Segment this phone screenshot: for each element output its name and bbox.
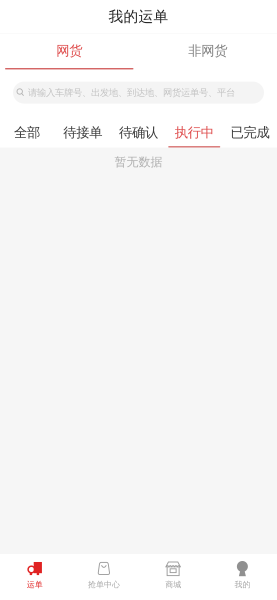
button[interactable]: 执行中: [168, 110, 220, 148]
button[interactable]: 网货: [0, 34, 138, 70]
staticText: 请输入车牌号、出发地、到达地、网货运单号、平台: [28, 87, 235, 98]
staticText: 待接单: [63, 124, 102, 141]
staticText: 待确认: [119, 124, 158, 141]
button[interactable]: 商城: [138, 555, 208, 599]
button[interactable]: 我的: [208, 555, 277, 599]
button[interactable]: 请输入车牌号、出发地、到达地、网货运单号、平台: [13, 82, 264, 104]
button[interactable]: 已完成: [224, 110, 276, 148]
staticText: 网货: [56, 43, 82, 59]
staticText: 抢单中心: [88, 580, 120, 589]
staticText: 全部: [14, 124, 40, 141]
button[interactable]: 抢单中心: [69, 555, 138, 599]
staticText: 商城: [165, 580, 181, 589]
button[interactable]: 运单: [0, 555, 69, 599]
staticText: 非网货: [188, 43, 227, 59]
staticText: 已完成: [230, 124, 269, 141]
button[interactable]: 待确认: [112, 110, 164, 148]
staticText: 我的: [234, 580, 250, 589]
button[interactable]: 待接单: [57, 110, 109, 148]
staticText: 运单: [27, 580, 43, 589]
staticText: 暂无数据: [114, 155, 162, 169]
staticText: 我的运单: [108, 7, 168, 25]
button[interactable]: 非网货: [138, 34, 277, 70]
button[interactable]: 全部: [1, 110, 53, 148]
staticText: 执行中: [175, 124, 214, 141]
